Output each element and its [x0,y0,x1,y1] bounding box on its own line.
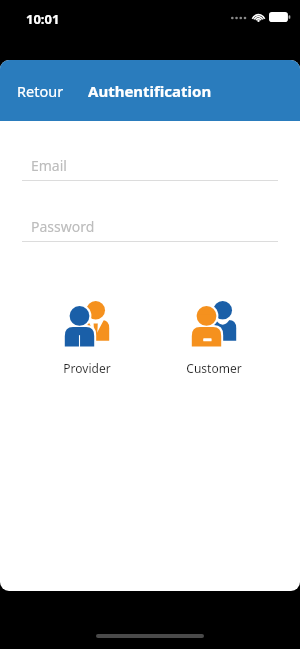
staticText: 10:01 [26,10,60,28]
staticText: Customer [186,360,242,376]
staticText: Provider [63,360,111,376]
staticText: Authentification [88,81,212,101]
button[interactable]: Password [22,217,278,242]
staticText: Retour [17,81,64,101]
staticText: Password [31,217,95,236]
button[interactable]: Provider [51,296,123,376]
staticText: Email [31,156,67,175]
button[interactable]: Customer [178,296,250,376]
button[interactable]: Retour [0,73,72,109]
button[interactable]: Email [22,156,278,181]
